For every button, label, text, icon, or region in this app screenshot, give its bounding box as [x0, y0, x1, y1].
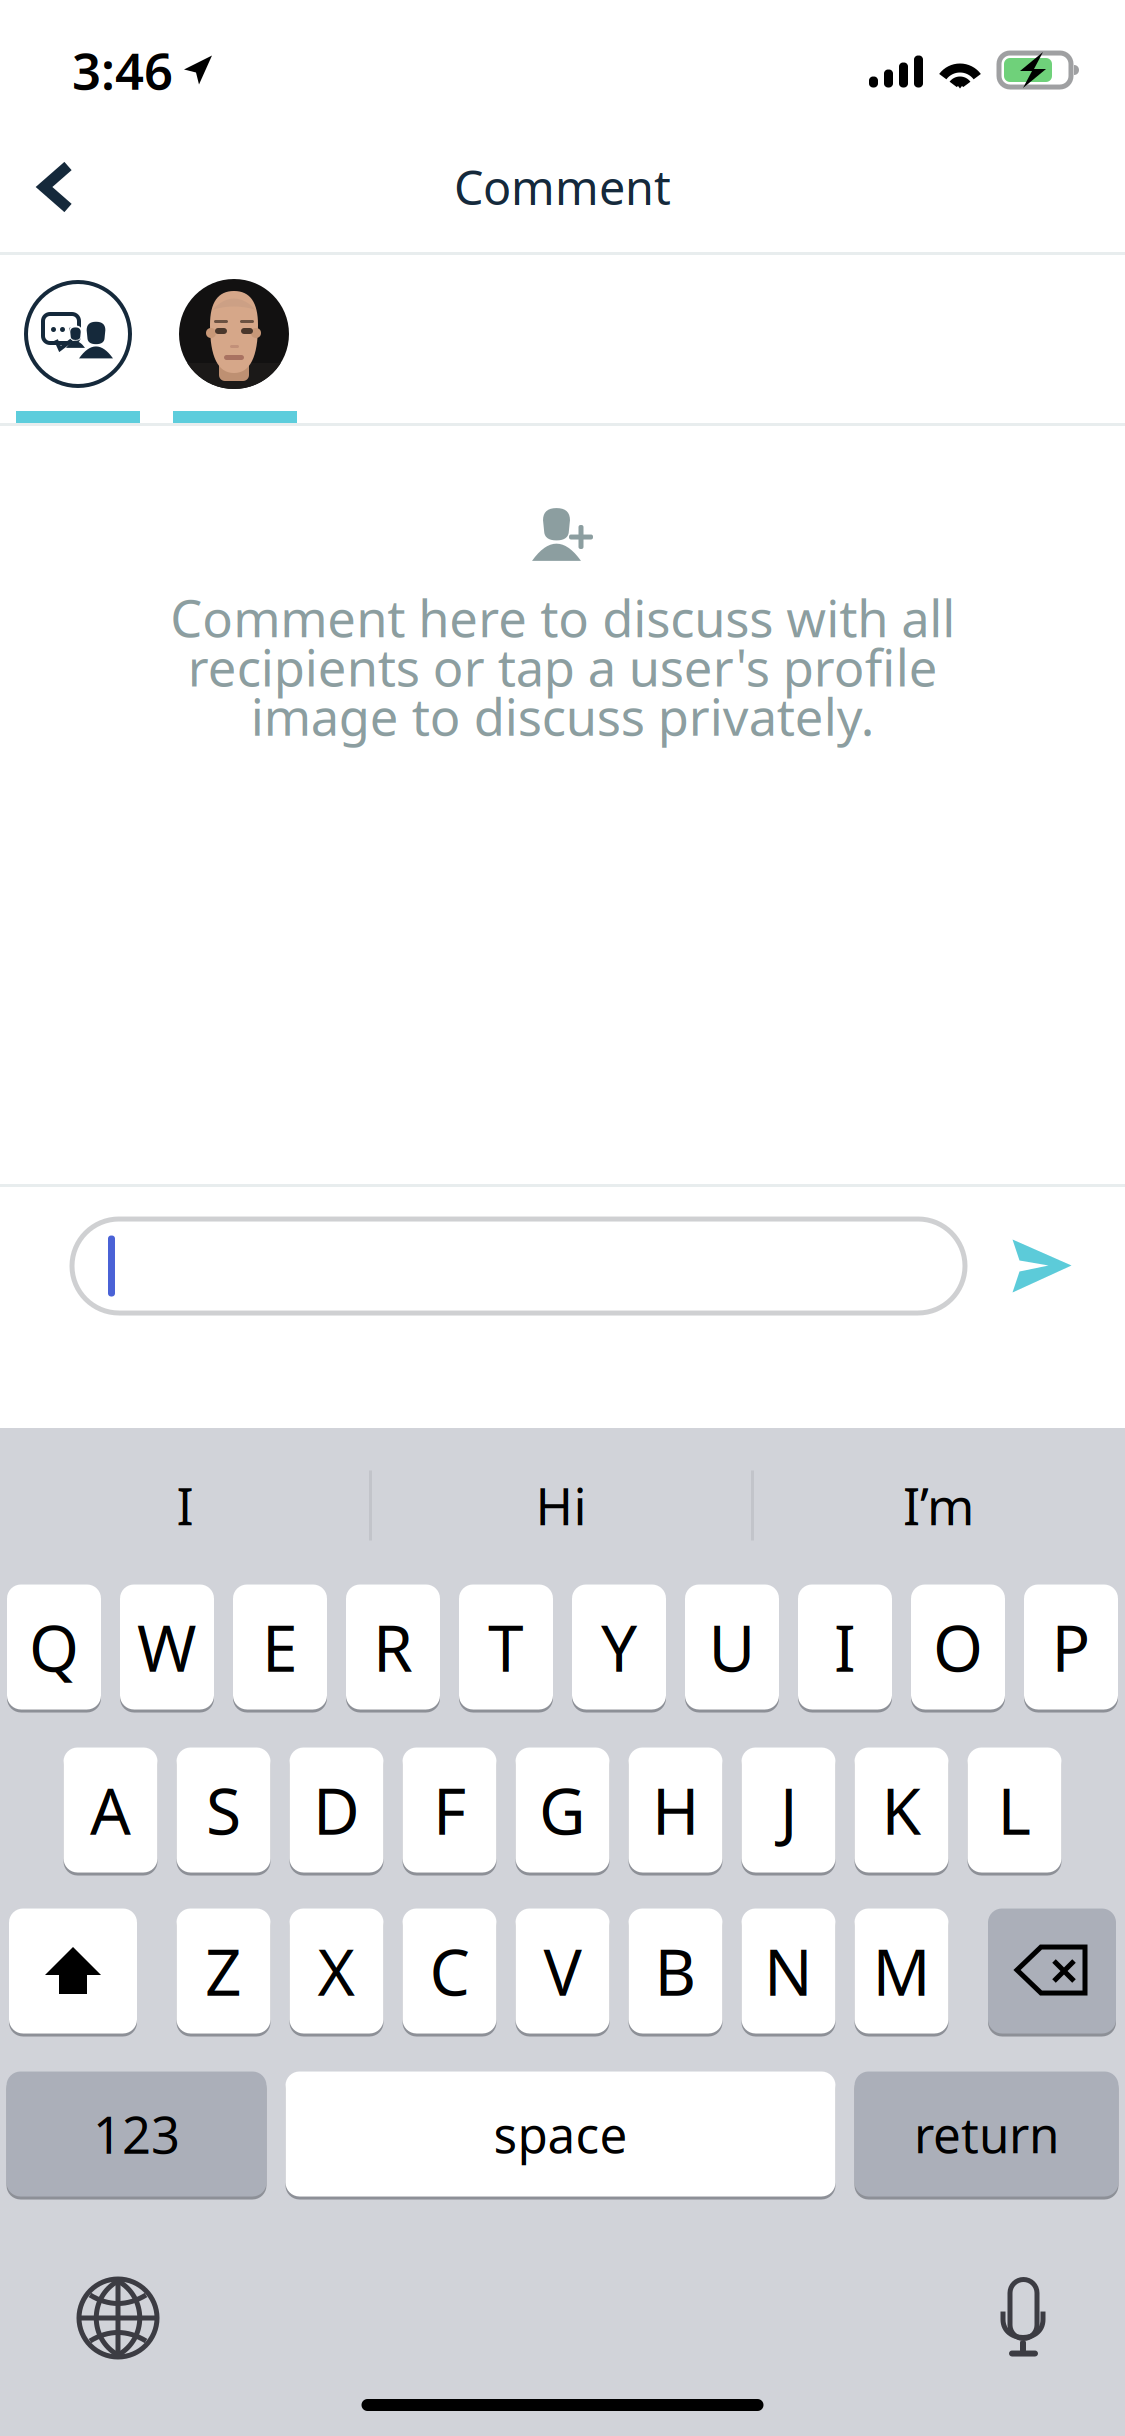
staticText: P	[1051, 1604, 1090, 1689]
button[interactable]: I	[0, 1428, 370, 1583]
button[interactable]: Open private chat	[156, 278, 312, 390]
staticText: B	[654, 1928, 696, 2013]
staticText: M	[872, 1928, 930, 2013]
button[interactable]: F	[402, 1746, 496, 1874]
staticText: S	[206, 1767, 241, 1852]
button[interactable]: space	[285, 2070, 835, 2198]
button[interactable]: Y	[572, 1583, 666, 1711]
button[interactable]: H	[628, 1746, 722, 1874]
button[interactable]: T	[459, 1583, 553, 1711]
button[interactable]: B	[628, 1907, 722, 2035]
button[interactable]: 123	[6, 2070, 266, 2198]
staticText: L	[997, 1767, 1031, 1852]
button[interactable]: I	[798, 1583, 892, 1711]
staticText: R	[373, 1604, 413, 1689]
staticText: Y	[601, 1604, 637, 1689]
button[interactable]: A	[63, 1746, 157, 1874]
button[interactable]: Message field	[72, 1217, 965, 1314]
staticText: T	[488, 1604, 524, 1689]
button[interactable]: X	[289, 1907, 383, 2035]
button[interactable]: V	[515, 1907, 609, 2035]
staticText: Comment here to discuss with all recipie…	[170, 584, 955, 750]
button[interactable]: Hi	[370, 1428, 752, 1583]
staticText: D	[313, 1767, 360, 1852]
button[interactable]: P	[1024, 1583, 1118, 1711]
staticText: W	[137, 1604, 197, 1689]
button[interactable]: L	[967, 1746, 1061, 1874]
button[interactable]: Send	[981, 1216, 1103, 1316]
button[interactable]: C	[402, 1907, 496, 2035]
button[interactable]: return	[854, 2070, 1118, 2198]
button[interactable]: G	[515, 1746, 609, 1874]
staticText: U	[708, 1604, 755, 1689]
staticText: I’m	[903, 1472, 974, 1539]
staticText: space	[493, 2101, 627, 2167]
button[interactable]: Shift	[9, 1907, 137, 2035]
staticText: F	[433, 1767, 466, 1852]
staticText: V	[543, 1928, 581, 2013]
button[interactable]: R	[346, 1583, 440, 1711]
button[interactable]: Delete	[988, 1907, 1116, 2035]
staticText: return	[914, 2101, 1059, 2167]
staticText: J	[780, 1767, 797, 1852]
button[interactable]: Group conversation	[0, 278, 156, 390]
button[interactable]: M	[854, 1907, 948, 2035]
button[interactable]: Q	[7, 1583, 101, 1711]
button[interactable]: U	[685, 1583, 779, 1711]
staticText: H	[652, 1767, 699, 1852]
staticText: X	[317, 1928, 355, 2013]
button[interactable]: E	[233, 1583, 327, 1711]
staticText: G	[539, 1767, 586, 1852]
staticText: I	[834, 1604, 856, 1689]
button[interactable]: K	[854, 1746, 948, 1874]
button[interactable]: I’m	[752, 1428, 1125, 1583]
button[interactable]: J	[741, 1746, 835, 1874]
button[interactable]: Z	[176, 1907, 270, 2035]
staticText: Q	[29, 1604, 79, 1689]
staticText: Comment	[454, 156, 671, 218]
staticText: E	[262, 1604, 298, 1689]
button[interactable]: N	[741, 1907, 835, 2035]
staticText: O	[933, 1604, 983, 1689]
button[interactable]: W	[120, 1583, 214, 1711]
staticText: 123	[93, 2100, 180, 2168]
button[interactable]: S	[176, 1746, 270, 1874]
button[interactable]: D	[289, 1746, 383, 1874]
staticText: I	[176, 1472, 193, 1539]
button[interactable]: Next keyboard	[58, 2278, 178, 2358]
staticText: A	[90, 1767, 131, 1852]
button[interactable]: Back	[0, 126, 112, 248]
button[interactable]: O	[911, 1583, 1005, 1711]
staticText: Hi	[535, 1472, 586, 1539]
staticText: N	[764, 1928, 813, 2013]
button[interactable]: Dictate	[963, 2278, 1083, 2358]
staticText: Z	[205, 1928, 242, 2013]
staticText: K	[881, 1767, 921, 1852]
staticText: C	[429, 1928, 469, 2013]
staticText: 3:46	[72, 36, 173, 104]
